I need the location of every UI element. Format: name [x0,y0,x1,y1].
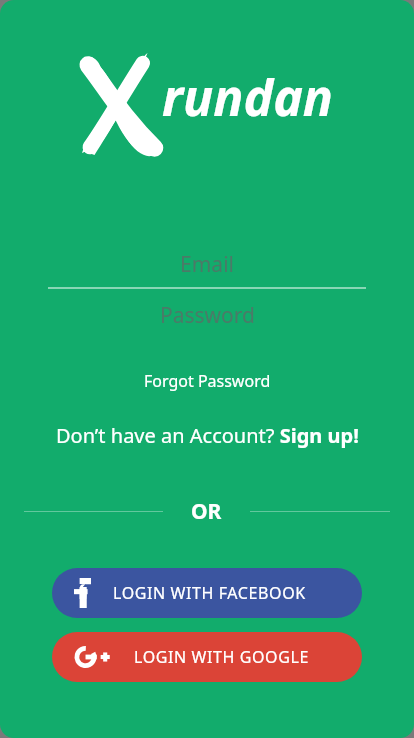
other: Google [74,645,108,669]
other: Facebook [74,578,91,608]
button[interactable]: Email [48,250,366,289]
staticText: Password [160,301,255,330]
staticText: Email [180,250,234,279]
button[interactable]: Facebook [52,568,362,618]
button[interactable]: Password [48,301,366,330]
staticText: Forgot Password [144,370,271,392]
button[interactable]: Forgot Password [132,366,283,396]
staticText: LOGIN WITH FACEBOOK [113,582,306,604]
staticText: OR [191,497,222,526]
staticText: Don’t have an Account? Sign up! [56,422,359,449]
button[interactable]: Google [52,632,362,682]
button[interactable]: Don’t have an Account? Sign up! [44,418,371,453]
staticText: rundan [162,63,333,131]
staticText: LOGIN WITH GOOGLE [134,646,309,668]
